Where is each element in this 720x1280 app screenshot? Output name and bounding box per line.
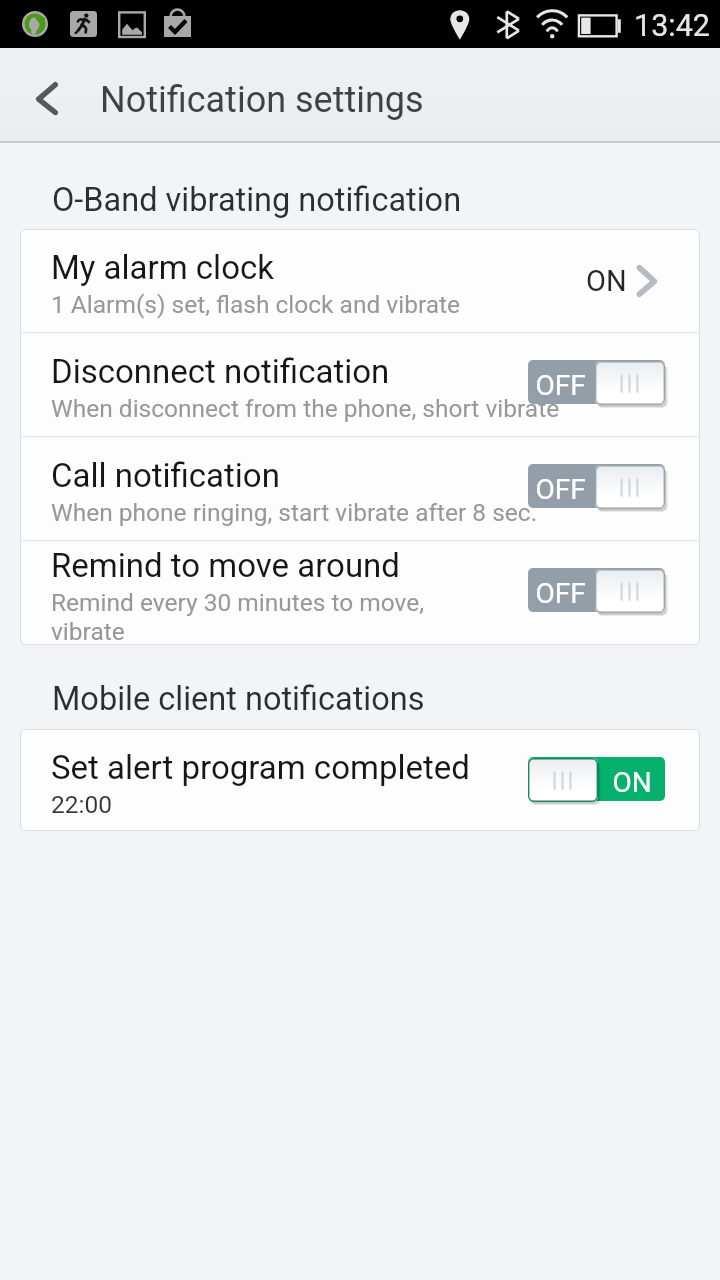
staticText: ON <box>612 766 652 799</box>
button[interactable]: Set alert program completed <box>20 729 700 831</box>
staticText: Call notification <box>51 456 280 495</box>
staticText: Remind every 30 minutes to move, vibrate <box>51 588 425 645</box>
staticText: Disconnect notification <box>51 352 390 391</box>
button[interactable]: My alarm clock <box>20 229 700 332</box>
staticText: 1 Alarm(s) set, flash clock and vibrate <box>51 290 461 319</box>
staticText: 13:42 <box>634 8 710 44</box>
staticText: ON <box>586 264 627 298</box>
staticText: When disconnect from the phone, short vi… <box>51 394 560 423</box>
staticText: Notification settings <box>100 79 424 121</box>
button[interactable]: Toggle off <box>528 568 665 616</box>
staticText: 22:00 <box>51 790 113 819</box>
staticText: Mobile client notifications <box>52 680 425 718</box>
button[interactable]: Back <box>0 48 96 141</box>
staticText: OFF <box>535 369 586 402</box>
button[interactable]: Disconnect notification <box>20 333 700 436</box>
staticText: OFF <box>535 473 586 506</box>
button[interactable]: Toggle on <box>528 757 665 805</box>
button[interactable]: Toggle off <box>528 464 665 512</box>
button[interactable]: Toggle off <box>528 360 665 408</box>
staticText: My alarm clock <box>51 248 274 287</box>
staticText: When phone ringing, start vibrate after … <box>51 498 538 527</box>
button[interactable]: Remind to move around <box>20 541 700 645</box>
staticText: Remind to move around <box>51 546 400 585</box>
staticText: O-Band vibrating notification <box>52 181 462 219</box>
staticText: Set alert program completed <box>51 748 470 787</box>
button[interactable]: Call notification <box>20 437 700 540</box>
staticText: OFF <box>535 577 586 610</box>
